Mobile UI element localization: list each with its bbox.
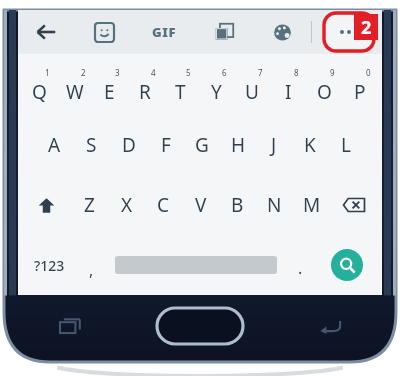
button[interactable]: Recents [52,308,88,344]
staticText: S [86,132,97,158]
staticText: 5 [186,67,191,78]
staticText: X [121,192,133,218]
button[interactable]: Comma [75,235,108,295]
button[interactable]: Period [284,235,317,295]
button[interactable]: N [256,175,293,235]
staticText: . [298,257,303,279]
button[interactable]: 5 [162,56,198,115]
button[interactable]: K [292,115,328,175]
staticText: O [317,79,332,105]
button[interactable]: G [184,115,220,175]
staticText: 3 [115,67,120,78]
button[interactable]: Translate [206,14,242,50]
button[interactable]: Theme [264,14,300,50]
button[interactable]: 0 [342,56,378,115]
staticText: I [285,79,292,105]
staticText: 7 [258,67,263,78]
staticText: H [231,132,246,158]
button[interactable]: F [147,115,184,175]
staticText: U [245,79,259,105]
staticText: Z [84,192,95,218]
staticText: 9 [330,67,335,78]
staticText: 2 [361,15,372,40]
button[interactable]: S [73,115,110,175]
button[interactable]: Shift [22,175,71,235]
button[interactable]: Backspace [330,175,378,235]
button[interactable]: ?123 [24,235,75,295]
button[interactable]: Search [331,249,363,281]
staticText: F [161,132,171,158]
button[interactable]: More options [326,15,372,49]
staticText: M [303,192,321,218]
button[interactable]: Home [157,308,243,344]
button[interactable]: D [110,115,147,175]
button[interactable]: 4 [127,56,162,115]
staticText: Q [32,79,47,105]
staticText: ?123 [34,256,65,275]
button[interactable]: 9 [306,56,342,115]
staticText: 1 [45,67,50,78]
button[interactable]: Back [312,308,348,344]
button[interactable]: M [293,175,330,235]
button[interactable]: 1 [22,56,57,115]
button[interactable]: Stickers [86,14,122,50]
button[interactable]: Z [71,175,108,235]
button[interactable]: 6 [198,56,234,115]
staticText: J [271,132,277,158]
button[interactable]: X [108,175,145,235]
staticText: 0 [366,67,371,78]
staticText: 6 [222,67,227,78]
staticText: P [354,79,366,105]
staticText: 2 [81,67,86,78]
button[interactable]: L [328,115,364,175]
staticText: GIF [152,23,177,41]
staticText: 4 [151,67,156,78]
staticText: R [139,79,151,105]
staticText: C [157,192,170,218]
button[interactable]: A [36,115,73,175]
staticText: G [195,132,209,158]
button[interactable]: V [182,175,219,235]
button[interactable]: 2 [57,56,92,115]
button[interactable]: GIF [144,12,184,52]
staticText: D [122,132,136,158]
button[interactable]: Back [26,12,66,52]
button[interactable]: Space [108,235,284,295]
staticText: , [89,259,94,281]
button[interactable]: 8 [270,56,306,115]
button[interactable]: 3 [92,56,127,115]
button[interactable]: J [256,115,292,175]
button[interactable]: H [220,115,256,175]
button[interactable]: B [219,175,256,235]
staticText: N [267,192,282,218]
staticText: E [104,79,115,105]
staticText: A [48,132,61,158]
staticText: Y [211,79,222,105]
staticText: T [175,79,186,105]
staticText: K [304,132,316,158]
staticText: L [341,132,351,158]
staticText: V [195,192,207,218]
staticText: 8 [294,67,299,78]
button[interactable]: 7 [234,56,270,115]
button[interactable]: C [145,175,182,235]
staticText: B [231,192,244,218]
staticText: W [66,79,84,105]
